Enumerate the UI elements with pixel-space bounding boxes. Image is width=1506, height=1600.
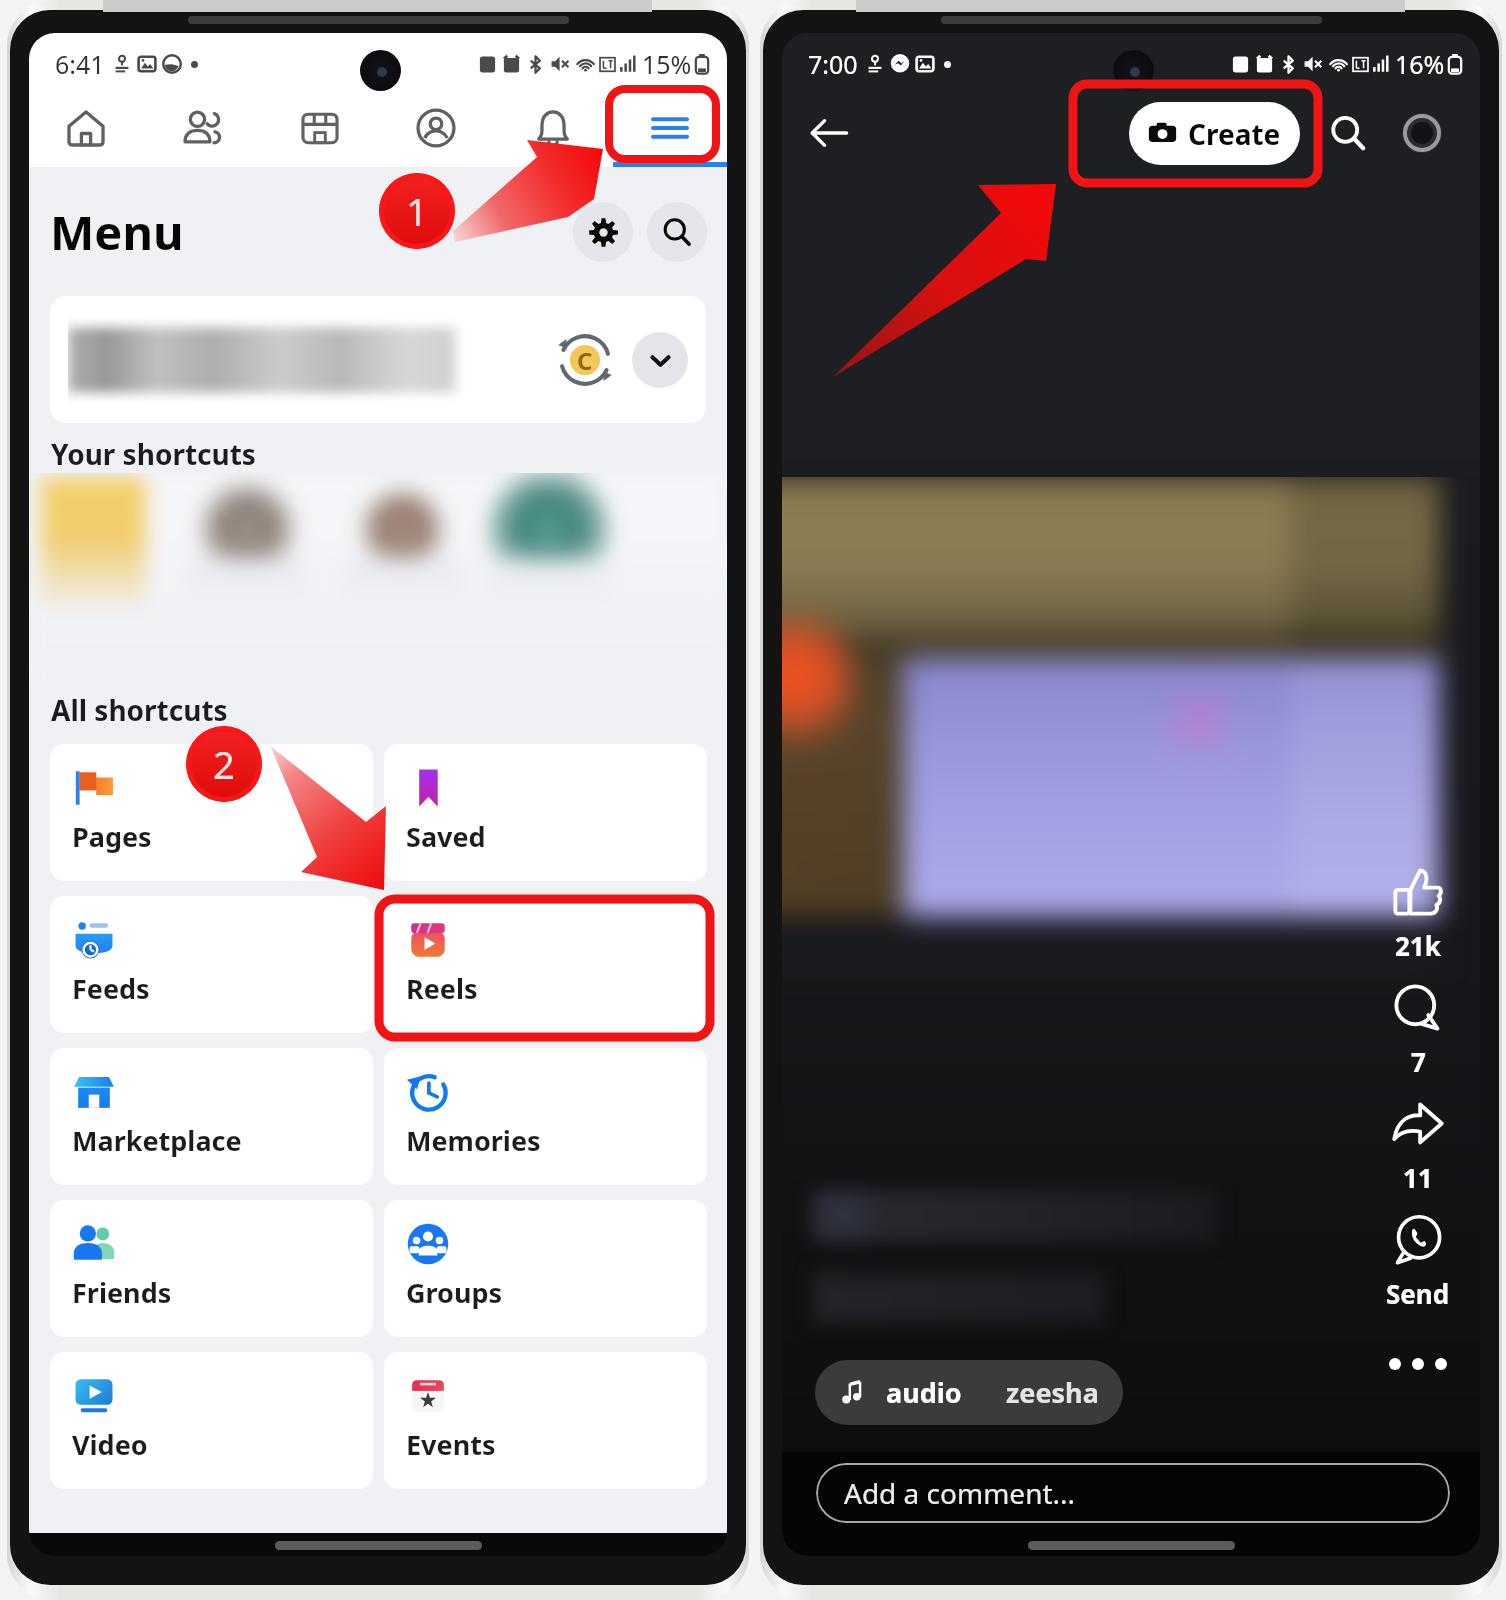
- button[interactable]: C: [50, 296, 706, 423]
- staticText: audio: [886, 1374, 962, 1411]
- button[interactable]: Saved: [384, 744, 707, 881]
- staticText: 1: [406, 185, 428, 237]
- staticText: 15%: [642, 47, 692, 81]
- button[interactable]: Reels: [384, 896, 707, 1033]
- staticText: 2: [213, 738, 235, 790]
- button[interactable]: Home: [29, 95, 143, 167]
- button[interactable]: Marketplace: [263, 95, 377, 167]
- staticText: 11: [1403, 1160, 1433, 1195]
- staticText: Marketplace: [72, 1122, 242, 1159]
- button[interactable]: Like: [1358, 865, 1478, 963]
- staticText: Create: [1188, 115, 1281, 153]
- staticText: 21k: [1395, 928, 1441, 963]
- button[interactable]: audio: [815, 1360, 1123, 1425]
- button[interactable]: Menu: [613, 95, 727, 167]
- staticText: Friends: [72, 1274, 172, 1311]
- staticText: All shortcuts: [51, 691, 228, 729]
- staticText: 7:00: [808, 47, 858, 81]
- button[interactable]: Comment: [1358, 981, 1478, 1079]
- button[interactable]: Feeds: [50, 896, 373, 1033]
- staticText: C: [577, 344, 593, 377]
- button[interactable]: Marketplace: [50, 1048, 373, 1185]
- staticText: 7: [1411, 1044, 1426, 1079]
- button[interactable]: Share: [1358, 1097, 1478, 1195]
- button[interactable]: Groups: [384, 1200, 707, 1337]
- button[interactable]: Add a comment...: [816, 1463, 1450, 1523]
- button[interactable]: Memories: [384, 1048, 707, 1185]
- staticText: Send: [1386, 1276, 1450, 1311]
- staticText: Events: [406, 1426, 496, 1463]
- button[interactable]: Events: [384, 1352, 707, 1489]
- button[interactable]: Back: [800, 104, 858, 162]
- staticText: Add a comment...: [844, 1474, 1076, 1512]
- staticText: 16%: [1395, 47, 1445, 81]
- button[interactable]: Send: [1358, 1213, 1478, 1311]
- button[interactable]: Pages: [50, 744, 373, 881]
- staticText: Feeds: [72, 970, 150, 1007]
- button[interactable]: Friends: [146, 95, 260, 167]
- staticText: Memories: [406, 1122, 541, 1159]
- button[interactable]: Profile: [379, 95, 493, 167]
- staticText: 6:41: [55, 47, 105, 81]
- button[interactable]: More options: [1387, 1333, 1449, 1395]
- button[interactable]: Create: [1129, 102, 1300, 165]
- button[interactable]: Profile: [1398, 109, 1446, 157]
- button[interactable]: Friends: [50, 1200, 373, 1337]
- staticText: Groups: [406, 1274, 503, 1311]
- staticText: Saved: [406, 818, 486, 855]
- button[interactable]: Search: [647, 202, 707, 262]
- staticText: Your shortcuts: [51, 435, 256, 473]
- staticText: Menu: [50, 200, 184, 264]
- button[interactable]: Search: [1322, 107, 1374, 159]
- staticText: Pages: [72, 818, 152, 855]
- button[interactable]: Notifications: [496, 95, 610, 167]
- staticText: zeesha: [1006, 1374, 1099, 1411]
- button[interactable]: Video: [50, 1352, 373, 1489]
- staticText: Reels: [406, 970, 478, 1007]
- button[interactable]: Settings: [573, 202, 633, 262]
- staticText: Video: [72, 1426, 148, 1463]
